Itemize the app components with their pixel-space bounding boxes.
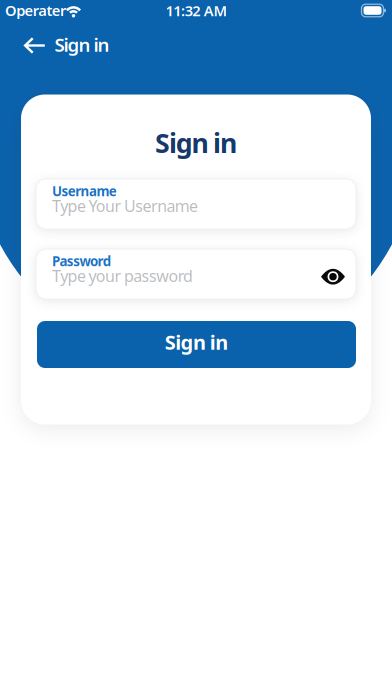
button[interactable]: Sign in [37, 321, 356, 368]
staticText: Username [52, 182, 117, 200]
button[interactable] [17, 28, 51, 62]
staticText: Type Your Username [52, 195, 198, 216]
staticText: Operater [5, 0, 66, 20]
staticText: Sign in [155, 125, 237, 160]
staticText: Sign in [165, 329, 228, 355]
staticText: Sign in [54, 32, 109, 57]
staticText: Password [52, 252, 111, 270]
button[interactable]: Username [36, 179, 356, 229]
staticText: 11:32 AM [165, 1, 227, 20]
staticText: Type your password [52, 265, 193, 286]
button[interactable]: Password [36, 249, 356, 299]
